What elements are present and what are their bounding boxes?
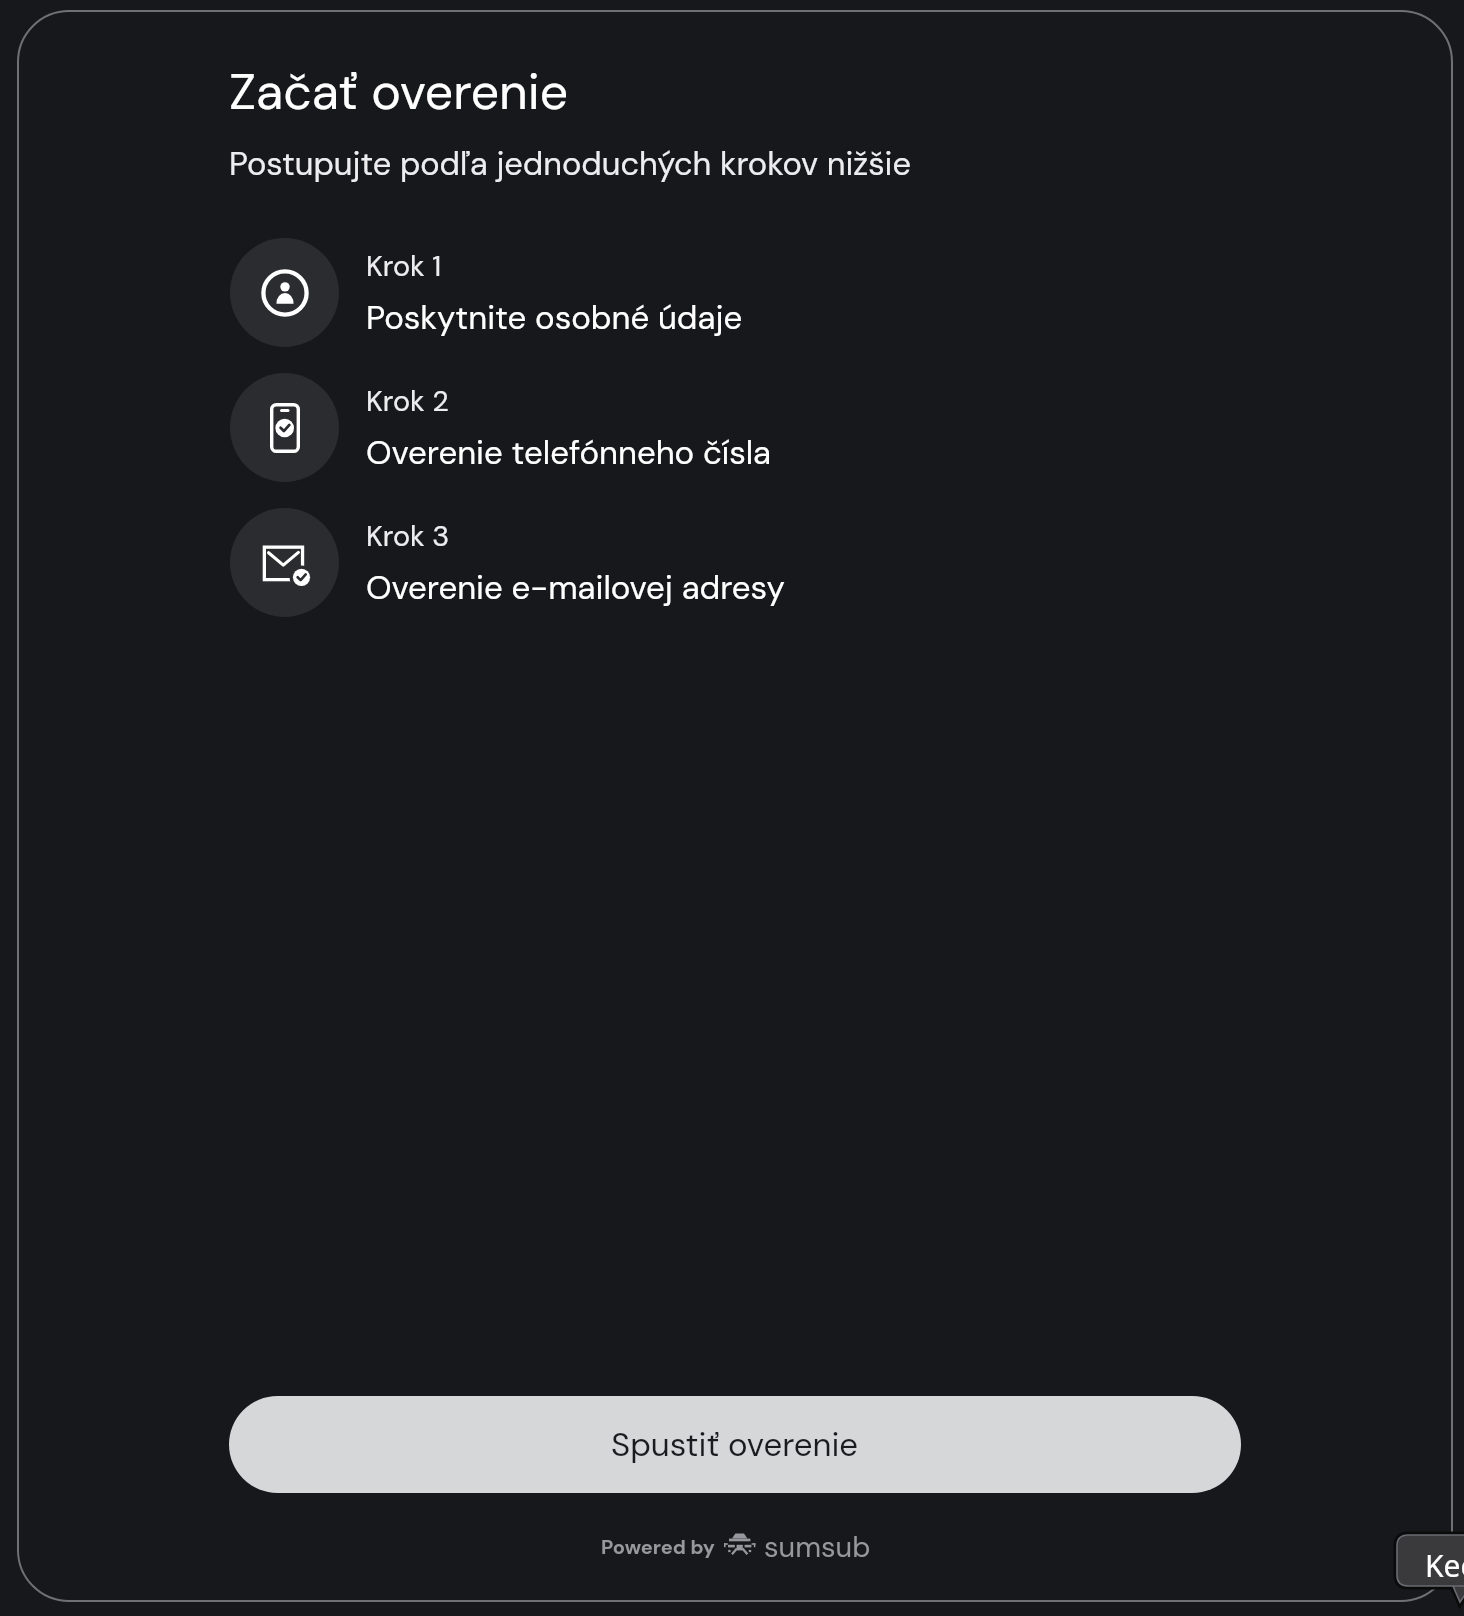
button[interactable]: Email verification (230, 508, 785, 617)
staticText: Krok 1 (366, 247, 442, 284)
staticText: Začať overenie (229, 59, 569, 124)
button[interactable]: Spustiť overenie (229, 1396, 1241, 1493)
staticText: Keep (1425, 1545, 1464, 1586)
staticText: Powered by (601, 1534, 715, 1560)
button[interactable]: Personal data (230, 238, 743, 347)
staticText: Spustiť overenie (611, 1423, 859, 1466)
other: Email verification (261, 540, 309, 586)
staticText: Poskytnite osobné údaje (366, 296, 743, 339)
staticText: sumsub (764, 1528, 871, 1566)
staticText: Krok 2 (366, 382, 449, 419)
other: Personal data (261, 269, 309, 317)
staticText: Postupujte podľa jednoduchých krokov niž… (229, 143, 911, 185)
button[interactable]: Phone verification (230, 373, 772, 482)
staticText: Overenie e-mailovej adresy (366, 566, 785, 609)
staticText: Krok 3 (366, 517, 450, 554)
other: Phone verification (270, 403, 300, 453)
staticText: Overenie telefónneho čísla (366, 431, 772, 474)
other: Sumsub (723, 1533, 758, 1558)
